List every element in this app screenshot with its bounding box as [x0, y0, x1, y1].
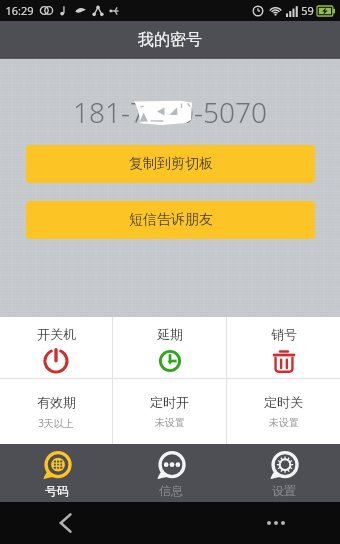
button[interactable]: 号码 — [0, 444, 114, 502]
button[interactable]: 定时开 — [113, 379, 226, 444]
staticText: 延期 — [157, 326, 183, 342]
staticText: 未设置 — [155, 416, 185, 429]
staticText: 有效期 — [37, 394, 76, 410]
button[interactable]: Back — [48, 506, 82, 540]
button[interactable]: 有效期 — [0, 379, 112, 444]
button[interactable]: 延期 — [113, 317, 226, 378]
staticText: 开关机 — [37, 326, 76, 342]
button[interactable]: 复制到剪切板 — [26, 145, 315, 183]
button[interactable]: 信息 — [114, 444, 227, 502]
staticText: 我的密号 — [138, 30, 202, 50]
staticText: 销号 — [271, 326, 297, 342]
staticText: 号码 — [45, 483, 69, 498]
staticText: 3天以上 — [38, 416, 74, 430]
staticText: 未设置 — [269, 416, 299, 429]
button[interactable]: 定时关 — [227, 379, 340, 444]
staticText: 设置 — [272, 483, 296, 498]
staticText: 59 — [301, 3, 314, 18]
button[interactable]: 短信告诉朋友 — [26, 201, 315, 239]
staticText: 16:29 — [5, 3, 34, 18]
staticText: 定时开 — [150, 394, 189, 410]
staticText: 短信告诉朋友 — [129, 211, 213, 229]
staticText: 信息 — [159, 483, 183, 498]
staticText: 定时关 — [264, 394, 303, 410]
staticText: 复制到剪切板 — [129, 155, 213, 173]
button[interactable]: More options — [259, 506, 293, 540]
button[interactable]: 设置 — [227, 444, 340, 502]
staticText: 181-7080-5070 — [73, 93, 267, 123]
button[interactable]: 销号 — [227, 317, 340, 378]
button[interactable]: 开关机 — [0, 317, 112, 378]
